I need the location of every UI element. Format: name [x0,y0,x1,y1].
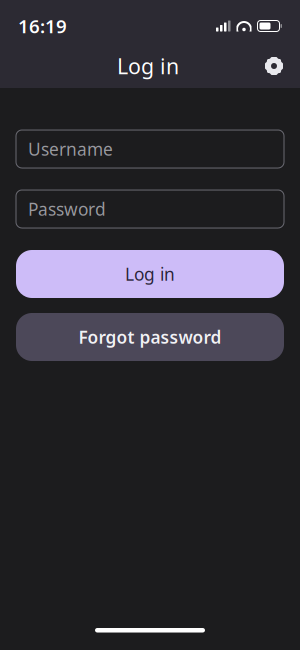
staticText: Forgot password [78,325,221,348]
staticText: Username [28,137,113,160]
button[interactable]: Settings [252,44,296,88]
button[interactable]: Log in [16,250,284,298]
button[interactable]: Forgot password [16,313,284,361]
staticText: 16:19 [18,14,67,38]
staticText: Log in [117,52,179,80]
staticText: Log in [125,262,175,285]
staticText: Password [28,197,106,220]
